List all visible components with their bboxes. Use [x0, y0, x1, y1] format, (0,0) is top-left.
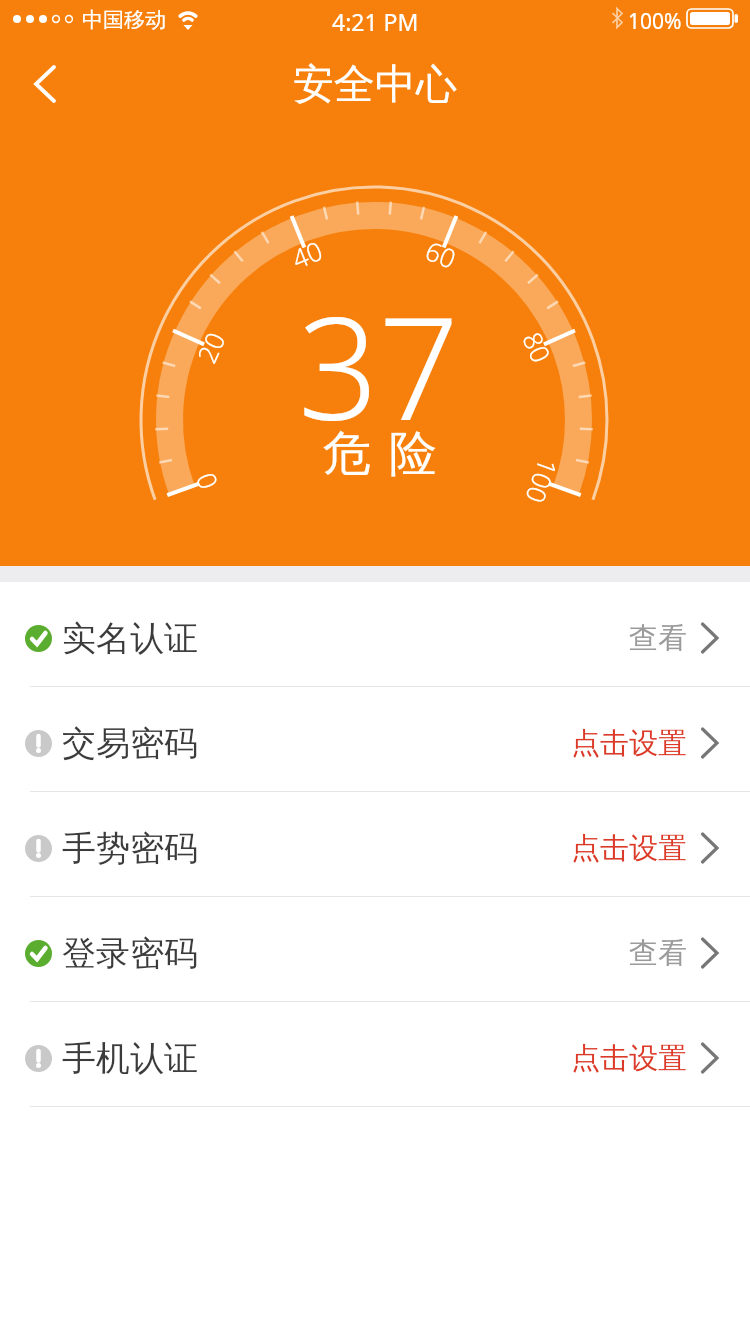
- staticText: 4:21 PM: [332, 6, 419, 37]
- staticText: 点击设置: [571, 830, 687, 867]
- staticText: 安全中心: [293, 59, 457, 111]
- staticText: 查看: [629, 935, 687, 972]
- staticText: 100%: [628, 7, 682, 36]
- staticText: 查看: [629, 620, 687, 657]
- button[interactable]: 实名认证: [0, 582, 750, 687]
- staticText: 交易密码: [62, 722, 198, 765]
- button[interactable]: 手势密码: [0, 792, 750, 897]
- button[interactable]: 交易密码: [0, 687, 750, 792]
- staticText: 实名认证: [62, 617, 198, 660]
- staticText: 手势密码: [62, 827, 198, 870]
- staticText: 中国移动: [82, 7, 166, 33]
- staticText: 手机认证: [62, 1037, 198, 1080]
- button[interactable]: 手机认证: [0, 1002, 750, 1107]
- staticText: 点击设置: [571, 1040, 687, 1077]
- button[interactable]: 登录密码: [0, 897, 750, 1002]
- staticText: 登录密码: [62, 932, 198, 975]
- staticText: 危险: [314, 424, 446, 484]
- staticText: 点击设置: [571, 725, 687, 762]
- button[interactable]: [16, 52, 72, 116]
- staticText: 37: [298, 269, 460, 461]
